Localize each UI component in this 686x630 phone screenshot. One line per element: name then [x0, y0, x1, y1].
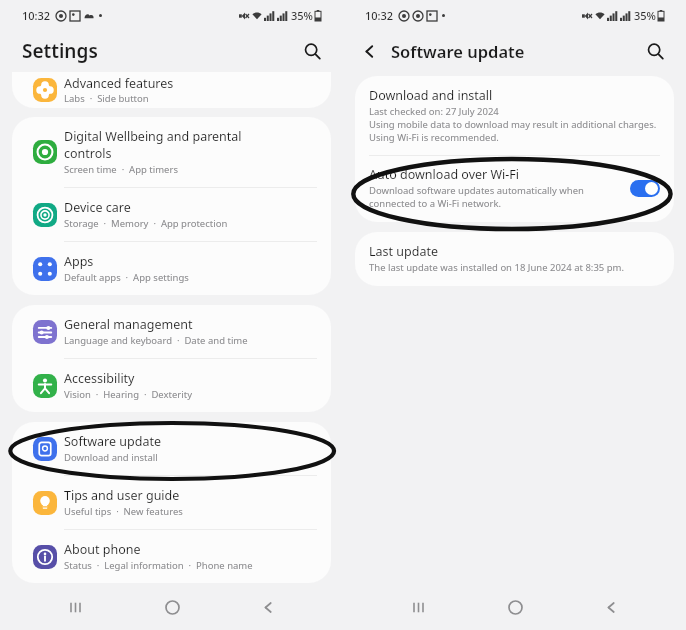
staticText: Storage · Memory · App protection	[64, 217, 228, 230]
staticText: Download and install	[369, 87, 493, 104]
staticText: Download software updates automatically …	[369, 184, 620, 210]
button[interactable]: Auto download over Wi-Fi toggle	[630, 180, 660, 197]
staticText: Advanced features	[64, 75, 174, 92]
staticText: Download and install	[64, 451, 158, 464]
button[interactable]: Software update	[12, 422, 331, 475]
staticText: Settings	[22, 38, 295, 64]
button[interactable]: Tips and user guide	[12, 476, 331, 529]
staticText: Useful tips · New features	[64, 505, 183, 518]
button[interactable]: Apps	[12, 242, 331, 295]
button[interactable]: Recents	[397, 586, 439, 628]
staticText: Tips and user guide	[64, 487, 180, 504]
button[interactable]: Download and install	[355, 76, 674, 155]
staticText: Device care	[64, 199, 131, 216]
staticText: Last checked on: 27 July 2024	[369, 105, 499, 118]
staticText: General management	[64, 316, 193, 333]
button[interactable]: Advanced features	[12, 72, 331, 108]
staticText: Digital Wellbeing and parental controls	[64, 128, 242, 162]
button[interactable]: Home	[494, 586, 536, 628]
staticText: Default apps · App settings	[64, 271, 189, 284]
staticText: Software update	[64, 433, 161, 450]
staticText: Vision · Hearing · Dexterity	[64, 388, 193, 401]
staticText: 10:32	[22, 8, 51, 23]
button[interactable]: Recents	[54, 586, 96, 628]
staticText: Software update	[391, 40, 638, 62]
staticText: Auto download over Wi-Fi	[369, 166, 520, 183]
staticText: Using mobile data to download may result…	[369, 118, 660, 144]
staticText: 35%	[291, 8, 313, 23]
button[interactable]: Back	[247, 586, 289, 628]
button[interactable]: Digital Wellbeing and parental controls	[12, 117, 331, 187]
staticText: Accessibility	[64, 370, 135, 387]
button[interactable]: Home	[151, 586, 193, 628]
button[interactable]: Device care	[12, 188, 331, 241]
staticText: Last update	[369, 243, 438, 260]
staticText: 10:32	[365, 8, 394, 23]
button[interactable]: Last update	[355, 232, 674, 286]
button[interactable]: General management	[12, 305, 331, 358]
staticText: Language and keyboard · Date and time	[64, 334, 248, 347]
button[interactable]: Auto download over Wi-Fi	[355, 156, 674, 222]
staticText: About phone	[64, 541, 141, 558]
staticText: Screen time · App timers	[64, 163, 178, 176]
staticText: 35%	[634, 8, 656, 23]
staticText: Apps	[64, 253, 94, 270]
button[interactable]: Back	[590, 586, 632, 628]
button[interactable]: About phone	[12, 530, 331, 583]
button[interactable]: Search	[295, 34, 329, 68]
staticText: Status · Legal information · Phone name	[64, 559, 253, 572]
button[interactable]: Back	[353, 35, 385, 67]
button[interactable]: Accessibility	[12, 359, 331, 412]
button[interactable]: Search	[638, 34, 672, 68]
staticText: The last update was installed on 18 June…	[369, 261, 624, 274]
staticText: Labs · Side button	[64, 92, 149, 105]
